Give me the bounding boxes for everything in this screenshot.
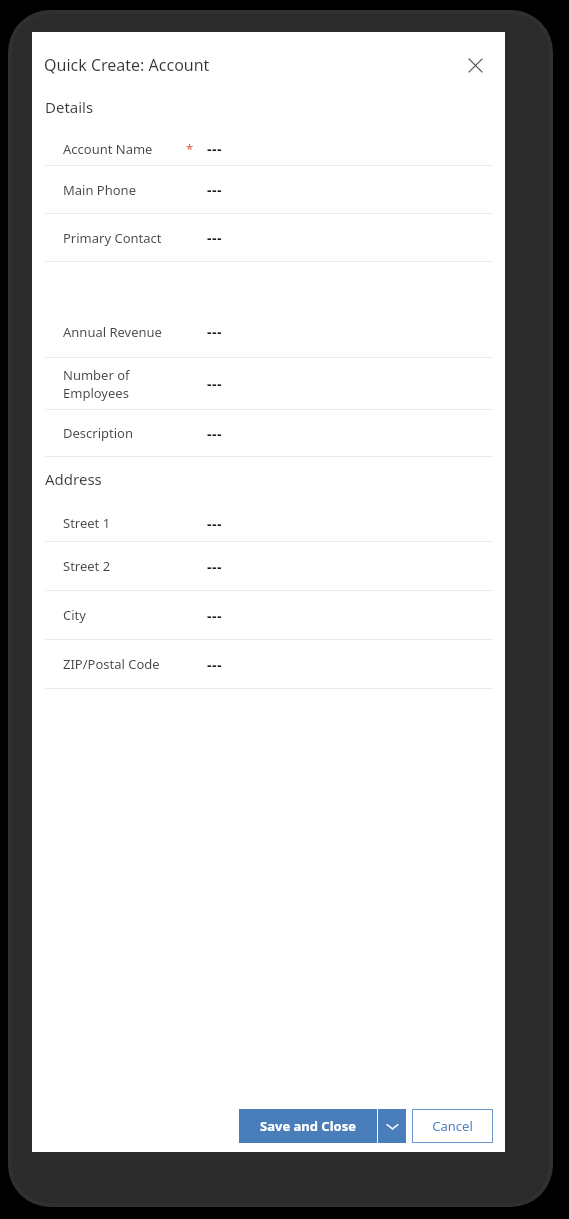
button[interactable]: Street 1 <box>32 505 505 541</box>
staticText: --- <box>207 655 222 674</box>
button[interactable]: Save and Close <box>239 1109 377 1143</box>
button[interactable]: Primary Contact <box>32 214 505 261</box>
staticText: * <box>186 140 194 158</box>
staticText: Main Phone <box>63 181 136 199</box>
staticText: --- <box>207 228 222 247</box>
button[interactable]: City <box>32 591 505 639</box>
button[interactable]: Number of <box>32 358 505 409</box>
button[interactable]: ZIP/Postal Code <box>32 640 505 688</box>
staticText: --- <box>207 514 222 533</box>
button[interactable]: Cancel <box>412 1109 493 1143</box>
staticText: Employees <box>63 384 129 402</box>
button[interactable]: Main Phone <box>32 166 505 213</box>
button[interactable]: Description <box>32 410 505 456</box>
button[interactable]: More save options <box>378 1109 406 1143</box>
staticText: ZIP/Postal Code <box>63 655 160 673</box>
staticText: Account Name <box>63 140 153 158</box>
staticText: --- <box>207 424 222 443</box>
staticText: --- <box>207 180 222 199</box>
staticText: Street 1 <box>63 514 111 532</box>
staticText: --- <box>207 557 222 576</box>
button[interactable]: Close <box>459 49 491 81</box>
staticText: --- <box>207 606 222 625</box>
staticText: --- <box>207 139 222 158</box>
button[interactable]: Account Name <box>32 132 505 165</box>
staticText: Details <box>45 97 94 117</box>
button[interactable]: Street 2 <box>32 542 505 590</box>
staticText: Address <box>45 469 102 489</box>
staticText: Save and Close <box>260 1117 356 1135</box>
staticText: Annual Revenue <box>63 323 162 341</box>
staticText: Number of <box>63 366 130 384</box>
staticText: Street 2 <box>63 557 111 575</box>
staticText: --- <box>207 374 222 393</box>
staticText: --- <box>207 322 222 341</box>
staticText: Cancel <box>432 1117 473 1135</box>
staticText: Primary Contact <box>63 229 162 247</box>
staticText: Quick Create: Account <box>44 54 210 76</box>
staticText: Description <box>63 424 133 442</box>
staticText: City <box>63 606 86 624</box>
button[interactable]: Annual Revenue <box>32 306 505 357</box>
